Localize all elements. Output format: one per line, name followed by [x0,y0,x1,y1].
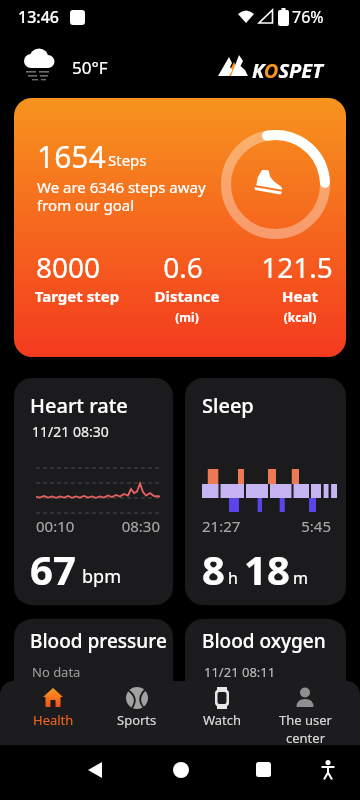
staticText: from our goal [37,195,135,215]
staticText: Blood pressure [30,628,167,654]
staticText: Sports [117,711,157,729]
button[interactable]: Sleep [185,378,346,605]
staticText: Health [33,711,74,729]
button[interactable]: Blood pressure [14,619,173,719]
staticText: Distance [127,286,247,306]
button[interactable]: Health [8,681,98,745]
staticText: 8 [202,542,225,596]
staticText: 121.5 [237,248,346,286]
staticText: 67 [30,542,76,596]
staticText: 11/21 08:11 [204,663,276,681]
staticText: Heat [240,286,346,306]
button[interactable] [173,762,189,778]
button[interactable]: Heart rate [14,378,173,605]
staticText: 8000 [14,248,128,286]
staticText: (kcal) [240,309,346,325]
staticText: 08:30 [100,516,160,536]
button[interactable] [88,762,103,778]
staticText: 18 [244,542,290,596]
staticText: 21:27 [202,516,241,536]
staticText: Heart rate [30,392,128,419]
staticText: m [293,567,308,589]
button[interactable]: Watch [177,681,267,745]
staticText: 00:10 [36,516,75,536]
staticText: 0.6 [123,248,243,286]
button[interactable] [320,760,336,780]
staticText: bpm [82,564,121,589]
staticText: 1654 [37,136,106,177]
staticText: Target step [17,286,137,306]
staticText: The user center [279,711,332,745]
staticText: Steps [108,150,147,170]
button[interactable]: 1654 [14,98,346,357]
button[interactable] [256,762,271,777]
staticText: We are 6346 steps away [37,177,206,197]
staticText: No data [32,663,81,681]
button[interactable]: Sports [92,681,182,745]
button[interactable]: The user center [260,681,350,745]
staticText: 5:45 [269,516,331,536]
staticText: Watch [203,711,242,729]
staticText: h [228,567,238,589]
staticText: Blood oxygen [202,628,326,654]
staticText: Sleep [202,392,254,419]
staticText: 50°F [72,56,108,79]
button[interactable]: Blood oxygen [185,619,346,719]
staticText: 76% [292,6,324,28]
staticText: 13:46 [18,6,59,28]
staticText: KOSPET [252,57,323,84]
staticText: 11/21 08:30 [32,422,109,441]
staticText: (mi) [127,309,247,325]
